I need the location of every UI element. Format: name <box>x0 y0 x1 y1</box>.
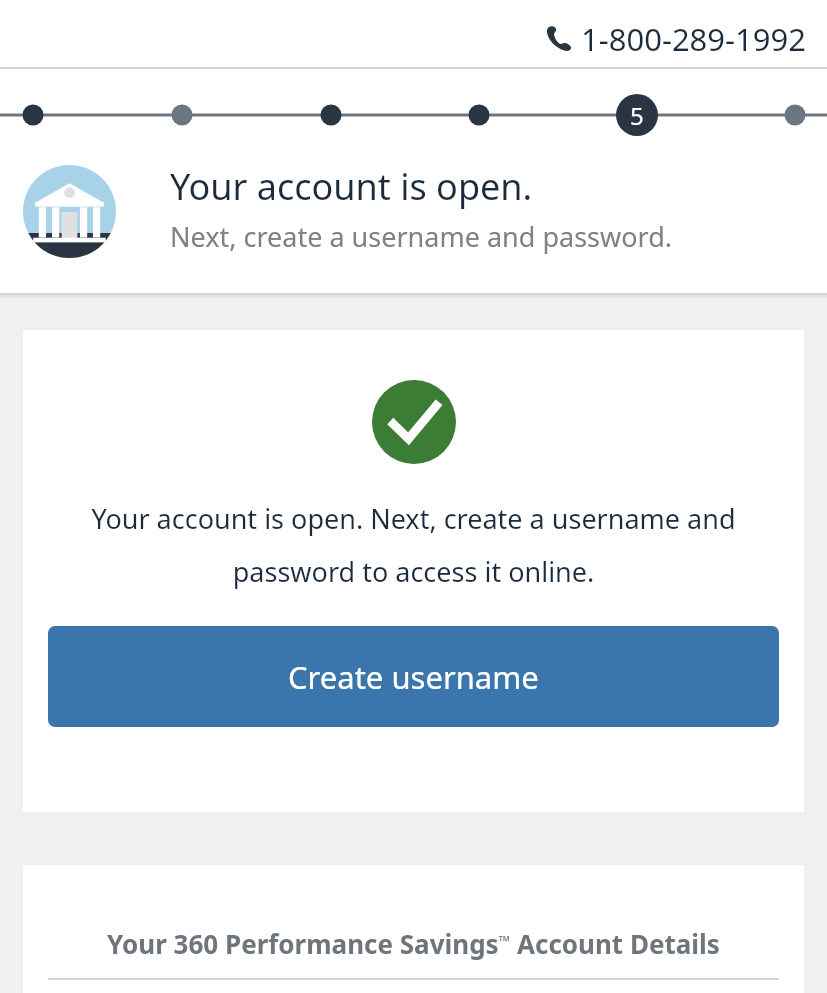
staticText: Next, create a username and password. <box>170 218 673 255</box>
staticText: Your account is open. <box>170 162 533 211</box>
staticText: 1-800-289-1992 <box>581 18 806 60</box>
staticText: Your 360 Performance Savings™ Account De… <box>107 926 720 961</box>
staticText: 5 <box>630 99 644 132</box>
staticText: Create username <box>288 656 539 698</box>
button[interactable]: Create username <box>48 626 779 727</box>
staticText: Your account is open. Next, create a use… <box>29 500 798 590</box>
button[interactable]: Call 1-800-289-1992 <box>543 16 808 62</box>
other: Call 1-800-289-1992 <box>545 26 572 53</box>
